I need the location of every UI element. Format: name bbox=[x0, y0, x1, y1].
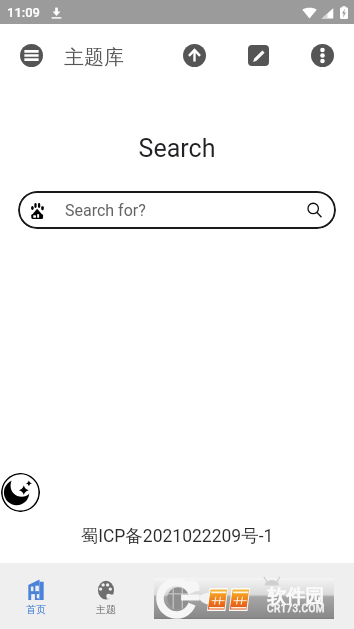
staticText: 软件园 bbox=[267, 585, 324, 609]
staticText: CR173.COM bbox=[267, 603, 325, 615]
staticText: Search for? bbox=[65, 201, 146, 220]
staticText: 主题库 bbox=[64, 45, 124, 70]
staticText: 11:09 bbox=[7, 5, 41, 20]
button[interactable]: Dark mode bbox=[1, 473, 40, 512]
button[interactable]: Search for? bbox=[18, 191, 336, 229]
button[interactable]: 首页 bbox=[10, 563, 61, 629]
staticText: Search bbox=[0, 134, 354, 163]
button[interactable]: 主题 bbox=[80, 563, 131, 629]
button[interactable]: More options bbox=[311, 44, 334, 67]
staticText: 主题 bbox=[96, 603, 116, 616]
staticText: 蜀ICP备2021022209号-1 bbox=[0, 525, 354, 547]
button[interactable]: Edit bbox=[248, 45, 269, 66]
staticText: 首页 bbox=[26, 603, 46, 616]
button[interactable]: Menu bbox=[20, 44, 43, 67]
button[interactable]: Upload bbox=[183, 44, 206, 67]
